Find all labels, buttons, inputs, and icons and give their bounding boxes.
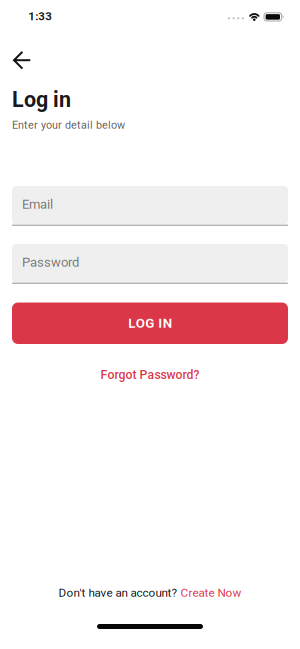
button[interactable]: Password	[12, 244, 288, 284]
staticText: Email	[22, 197, 53, 212]
staticText: 1:33	[28, 10, 52, 23]
staticText: Forgot Password?	[100, 368, 199, 382]
staticText: Create Now	[180, 586, 241, 600]
staticText: Enter your detail below	[12, 119, 125, 131]
button[interactable]: Email	[12, 186, 288, 226]
staticText: Password	[22, 255, 79, 270]
button[interactable]: Don't have an account?	[58, 583, 241, 603]
staticText: LOG IN	[128, 315, 172, 331]
button[interactable]: Back	[2, 40, 42, 80]
button[interactable]: LOG IN	[12, 302, 288, 344]
button[interactable]: Forgot Password?	[92, 363, 207, 387]
staticText: Log in	[12, 87, 71, 112]
staticText: Don't have an account?	[58, 586, 177, 600]
